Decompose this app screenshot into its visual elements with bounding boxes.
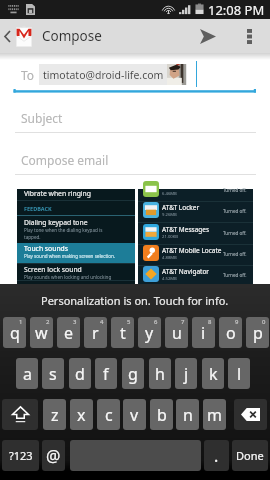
staticText: To <box>21 67 35 83</box>
staticText: 3 <box>73 318 77 326</box>
staticText: 4.88MB <box>162 255 177 261</box>
staticText: 0 <box>262 318 266 326</box>
staticText: c <box>105 404 113 426</box>
staticText: 4.52MB <box>162 276 177 282</box>
staticText: e <box>64 322 74 344</box>
staticText: 2 <box>46 318 50 326</box>
staticText: AT&T Messages <box>162 225 210 234</box>
staticText: Play sound when making screen selection. <box>24 253 116 259</box>
button[interactable]: r <box>84 317 107 348</box>
button[interactable]: j <box>175 358 197 389</box>
button[interactable]: k <box>202 358 224 389</box>
button[interactable]: c <box>97 399 120 430</box>
button[interactable]: a <box>16 358 38 389</box>
staticText: a <box>23 363 32 385</box>
staticText: g <box>128 363 138 385</box>
button[interactable]: l <box>228 358 250 389</box>
staticText: Play sounds when locking and unlocking <box>24 274 112 280</box>
staticText: 7 <box>181 318 185 326</box>
staticText: v <box>130 404 139 426</box>
staticText: Compose email <box>21 152 109 168</box>
button[interactable]: t <box>111 317 134 348</box>
staticText: 9 <box>235 318 239 326</box>
button[interactable]: v <box>123 399 146 430</box>
staticText: Turned off. <box>223 230 247 236</box>
button[interactable]: h <box>149 358 171 389</box>
button[interactable]: i <box>192 317 215 348</box>
staticText: s <box>49 363 57 385</box>
staticText: tapped. <box>24 234 41 240</box>
button[interactable]: p <box>246 317 269 348</box>
staticText: . <box>214 445 219 467</box>
staticText: w <box>35 322 48 344</box>
button[interactable]: m <box>203 399 226 430</box>
staticText: 6.46MB <box>162 191 177 197</box>
staticText: q <box>10 322 20 344</box>
staticText: t <box>120 322 126 344</box>
staticText: AT&T Locker <box>162 203 200 212</box>
staticText: 1 <box>19 318 23 326</box>
staticText: z <box>51 404 59 426</box>
staticText: Screen lock sound <box>24 265 82 274</box>
staticText: AT&T Navigator <box>162 267 210 276</box>
staticText: Subject <box>21 110 63 126</box>
button[interactable]: Personalization is on. Touch for info. <box>0 284 270 317</box>
staticText: 12:08 PM <box>208 1 265 19</box>
staticText: h <box>155 363 165 385</box>
button[interactable]: y <box>138 317 161 348</box>
staticText: 4 <box>100 318 104 326</box>
staticText: Screen sounds <box>24 282 71 291</box>
staticText: timotato@droid-life.com <box>43 68 164 82</box>
staticText: b <box>157 404 167 426</box>
button[interactable]: More options <box>234 19 264 53</box>
button[interactable]: Send <box>190 19 226 53</box>
button[interactable]: s <box>42 358 64 389</box>
button[interactable]: u <box>165 317 188 348</box>
staticText: Personalization is on. Touch for info. <box>41 293 229 308</box>
button[interactable]: f <box>95 358 117 389</box>
staticText: Play tone when the dialing keypad is <box>24 227 103 233</box>
button[interactable]: q <box>3 317 26 348</box>
staticText: Touch sounds <box>24 244 69 253</box>
button[interactable]: e <box>57 317 80 348</box>
button[interactable]: @ <box>42 440 65 471</box>
button[interactable]: ?123 <box>2 440 39 471</box>
staticText: f <box>103 363 109 385</box>
button[interactable]: o <box>219 317 242 348</box>
staticText: 21.00KB <box>162 234 179 240</box>
staticText: 5 <box>127 318 131 326</box>
staticText: AT&T Mobile Locate <box>162 246 222 255</box>
button[interactable]: Back <box>0 19 14 53</box>
staticText: d <box>75 363 85 385</box>
staticText: k <box>209 363 218 385</box>
staticText: m <box>207 404 222 426</box>
staticText: x <box>77 404 86 426</box>
button[interactable]: x <box>70 399 93 430</box>
staticText: FEEDBACK <box>24 205 52 212</box>
button[interactable]: . <box>204 440 229 471</box>
staticText: Vibrate when ringing <box>24 189 91 198</box>
button[interactable] <box>2 399 38 430</box>
button[interactable] <box>234 399 267 430</box>
staticText: 6 <box>154 318 158 326</box>
staticText: 9.26MB <box>162 212 177 218</box>
staticText: Done <box>236 448 264 463</box>
staticText: u <box>172 322 182 344</box>
staticText: Compose <box>42 27 102 45</box>
staticText: l <box>237 363 242 385</box>
staticText: j <box>184 363 189 385</box>
button[interactable]: w <box>30 317 53 348</box>
button[interactable]: b <box>150 399 173 430</box>
button[interactable]: n <box>176 399 199 430</box>
staticText: o <box>226 322 236 344</box>
button[interactable]: Done <box>232 440 268 471</box>
staticText: p <box>253 322 263 344</box>
button[interactable]: g <box>122 358 144 389</box>
staticText: Turned off. <box>223 208 247 214</box>
button[interactable]: z <box>43 399 66 430</box>
staticText: r <box>92 322 99 344</box>
staticText: @ <box>46 445 61 467</box>
button[interactable]: d <box>69 358 91 389</box>
staticText: i <box>201 322 206 344</box>
